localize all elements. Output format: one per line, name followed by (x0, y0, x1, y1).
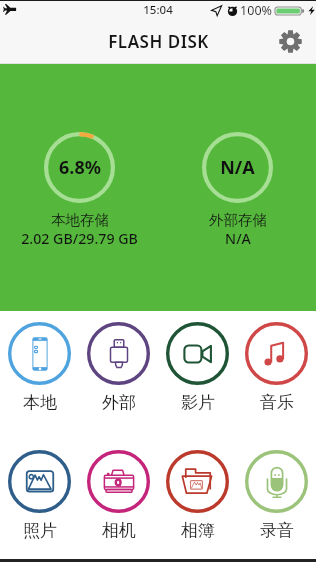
staticText: N/A (220, 155, 255, 180)
button[interactable]: 影片 (158, 322, 237, 413)
staticText: 外部 (102, 392, 136, 413)
staticText: 相机 (102, 520, 136, 541)
staticText: 本地 (23, 392, 57, 413)
button[interactable]: 本地 (0, 322, 79, 413)
button[interactable]: 录音 (237, 450, 316, 541)
staticText: N/A (225, 229, 251, 248)
button[interactable]: Settings (273, 24, 307, 58)
staticText: 6.8% (59, 155, 101, 180)
button[interactable]: 外部 (79, 322, 158, 413)
staticText: 音乐 (260, 392, 294, 413)
staticText: 本地存储 (51, 211, 109, 229)
button[interactable]: 相簿 (158, 450, 237, 541)
button[interactable]: 照片 (0, 450, 79, 541)
staticText: 15:04 (143, 2, 173, 18)
staticText: FLASH DISK (108, 30, 209, 53)
staticText: 照片 (23, 520, 57, 541)
staticText: 100% (240, 2, 272, 19)
button[interactable]: 音乐 (237, 322, 316, 413)
staticText: 影片 (181, 392, 215, 413)
staticText: 相簿 (181, 520, 215, 541)
button[interactable]: 相机 (79, 450, 158, 541)
staticText: 录音 (260, 520, 294, 541)
staticText: 外部存储 (209, 211, 267, 229)
staticText: 2.02 GB/29.79 GB (21, 229, 138, 248)
